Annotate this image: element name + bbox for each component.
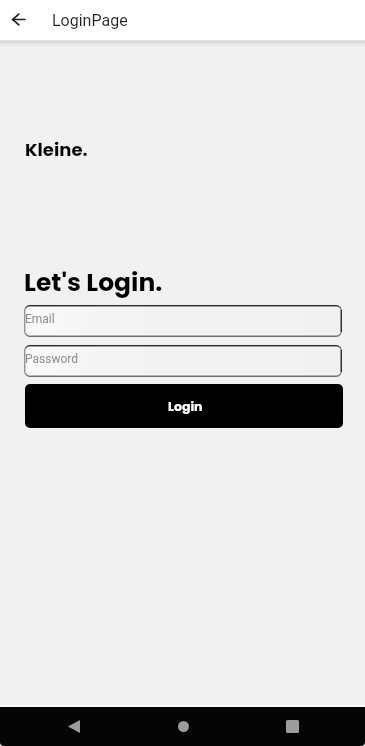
staticText: Login xyxy=(168,398,203,415)
staticText: Password xyxy=(25,352,79,366)
button[interactable]: Login xyxy=(25,384,343,428)
button[interactable]: Back xyxy=(0,707,146,746)
button[interactable]: Recent apps xyxy=(219,707,365,746)
staticText: LoginPage xyxy=(52,11,128,30)
staticText: Let's Login. xyxy=(24,265,163,300)
staticText: Kleine. xyxy=(25,137,88,162)
button[interactable]: Home xyxy=(146,707,219,746)
button[interactable]: Back xyxy=(9,10,30,31)
button[interactable]: Password xyxy=(24,345,342,377)
staticText: Email xyxy=(25,312,55,326)
button[interactable]: Email xyxy=(24,305,342,337)
